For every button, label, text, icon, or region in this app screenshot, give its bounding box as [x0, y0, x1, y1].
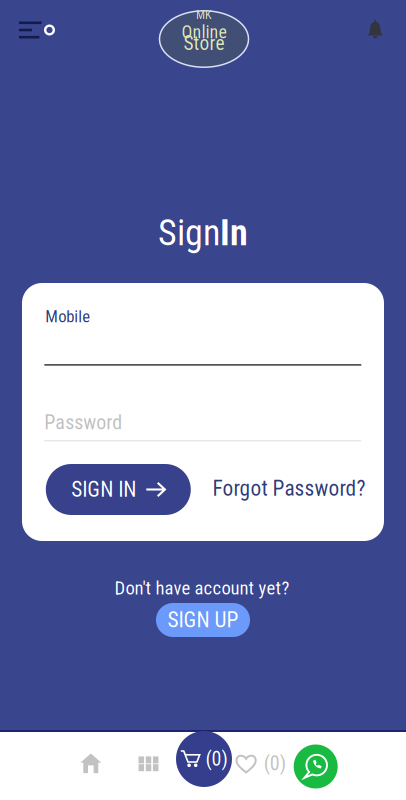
staticText: Sign	[158, 212, 220, 254]
staticText: Don't have account yet?	[114, 577, 289, 599]
staticText: SIGN UP	[167, 607, 238, 632]
button[interactable]: WhatsApp	[294, 744, 338, 788]
staticText: MK	[196, 8, 212, 22]
button[interactable]: (0)	[176, 731, 232, 787]
staticText: In	[220, 212, 248, 254]
staticText: Forgot Password?	[212, 476, 365, 501]
staticText: (0)	[264, 752, 286, 775]
staticText: Password	[44, 411, 122, 434]
button[interactable]: SIGN UP	[156, 603, 250, 637]
button[interactable]: Categories	[126, 742, 170, 786]
staticText: Store	[183, 32, 224, 55]
staticText: Online	[181, 21, 226, 43]
button[interactable]: Notifications	[353, 7, 397, 51]
button[interactable]: SIGN IN	[46, 464, 191, 515]
staticText: (0)	[205, 747, 227, 771]
button[interactable]: (0)	[233, 746, 287, 780]
button[interactable]: Home	[69, 741, 113, 785]
button[interactable]: Menu	[19, 8, 75, 52]
staticText: SIGN IN	[71, 477, 136, 502]
staticText: Mobile	[45, 307, 90, 326]
button[interactable]: Forgot Password?	[205, 473, 373, 503]
